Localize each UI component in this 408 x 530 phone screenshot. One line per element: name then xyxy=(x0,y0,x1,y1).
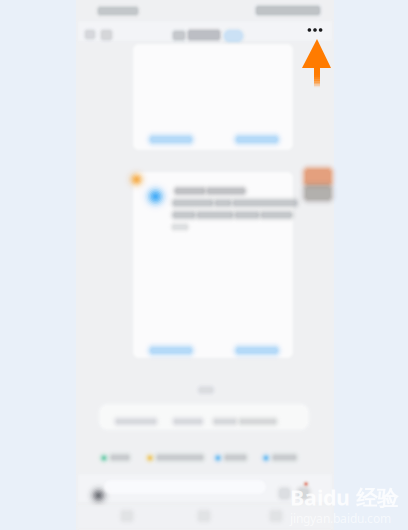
staticText: Baidu 经验 xyxy=(290,483,398,511)
button[interactable]: More xyxy=(301,21,329,39)
button[interactable] xyxy=(131,170,295,360)
button[interactable]: Tab xyxy=(113,506,141,526)
button[interactable] xyxy=(208,448,240,460)
button[interactable]: Tab xyxy=(190,506,218,526)
button[interactable] xyxy=(256,448,290,460)
button[interactable] xyxy=(94,448,123,460)
button[interactable]: Tab xyxy=(262,506,290,526)
staticText: jingyan.baidu.com xyxy=(290,510,391,526)
button[interactable] xyxy=(140,448,197,460)
button[interactable] xyxy=(131,42,295,152)
